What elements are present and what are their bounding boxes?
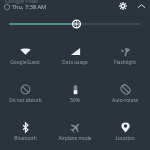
staticText: Bluetooth [14, 135, 37, 142]
staticText: Location [115, 135, 135, 142]
staticText: 50% [70, 97, 80, 104]
button[interactable]: Do not disturb [0, 71, 50, 104]
staticText: Thu, 7:38 AM [12, 3, 47, 11]
button[interactable]: Location [100, 109, 150, 142]
staticText: GoogleGuest [10, 59, 40, 66]
button[interactable]: 50% [50, 71, 100, 104]
staticText: Auto-rotate [112, 97, 138, 104]
button[interactable]: Auto-rotate [100, 71, 150, 104]
staticText: Data usage [62, 59, 88, 66]
button[interactable]: Collapse [135, 0, 147, 12]
button[interactable]: Data usage [50, 33, 100, 66]
staticText: Flashlight [114, 59, 136, 66]
button[interactable]: GoogleGuest [0, 33, 50, 66]
staticText: Airplane mode [58, 135, 92, 142]
staticText: Do not disturb [9, 97, 42, 104]
staticText: Google Pixel [5, 0, 38, 5]
button[interactable]: Settings [117, 0, 128, 11]
button[interactable]: Brightness [0, 16, 150, 32]
button[interactable]: Airplane mode [50, 109, 100, 142]
button[interactable]: Bluetooth [0, 109, 50, 142]
button[interactable]: Flashlight [100, 33, 150, 66]
